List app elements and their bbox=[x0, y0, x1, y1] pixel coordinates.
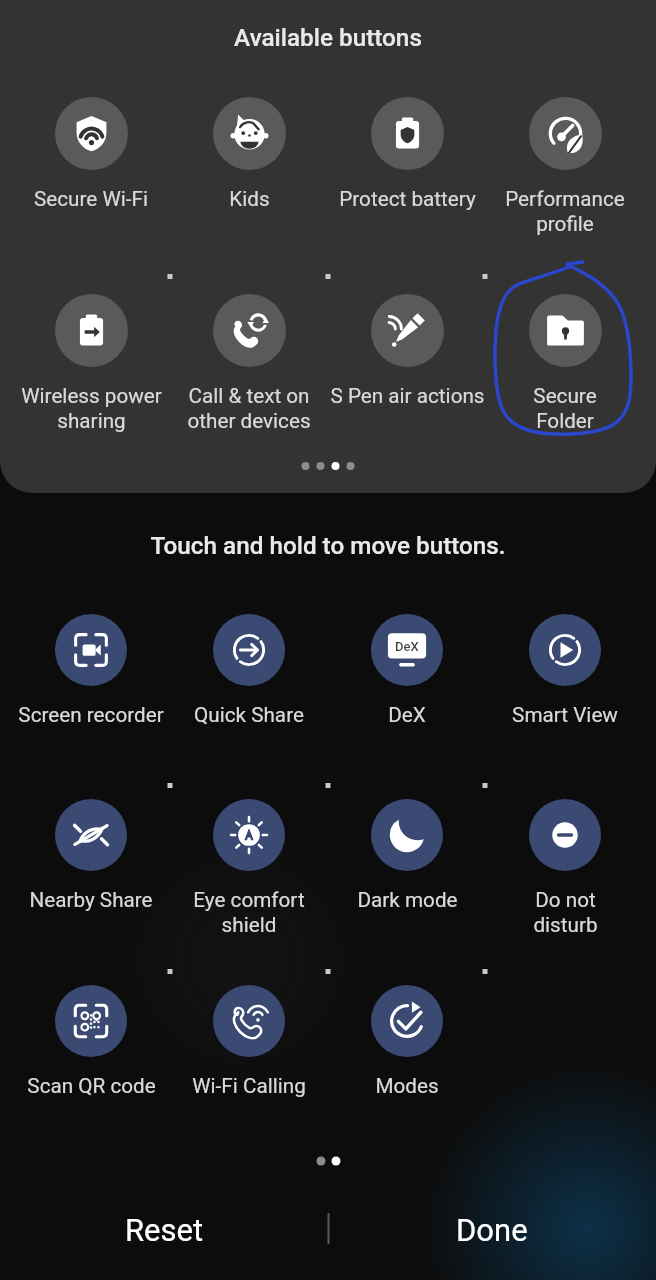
other: Modes bbox=[371, 985, 443, 1057]
other: Secure Wi-Fi bbox=[55, 97, 128, 170]
button[interactable]: DeX bbox=[328, 614, 486, 727]
other: Wi-Fi Calling bbox=[213, 985, 285, 1057]
staticText: Screen recorder bbox=[18, 703, 164, 727]
button[interactable]: Performance profile bbox=[486, 97, 644, 236]
staticText: Dark mode bbox=[357, 888, 458, 912]
other: Nearby Share bbox=[55, 799, 127, 871]
staticText: Wi-Fi Calling bbox=[192, 1074, 306, 1098]
staticText: Modes bbox=[375, 1074, 439, 1098]
other: Kids bbox=[213, 97, 286, 170]
staticText: Smart View bbox=[512, 703, 618, 727]
button[interactable]: Protect battery bbox=[328, 97, 486, 211]
other: Screen recorder bbox=[55, 614, 127, 686]
other: Dark mode bbox=[371, 799, 443, 871]
staticText: Touch and hold to move buttons. bbox=[0, 531, 656, 559]
other: Smart View bbox=[529, 614, 601, 686]
staticText: Do not disturb bbox=[533, 888, 598, 937]
button[interactable]: Done bbox=[328, 1205, 656, 1255]
button[interactable]: Wireless power sharing bbox=[12, 294, 170, 433]
staticText: Protect battery bbox=[339, 187, 476, 211]
other: Quick Share bbox=[213, 614, 285, 686]
button[interactable]: Scan QR code bbox=[12, 985, 170, 1098]
button[interactable]: Reset bbox=[0, 1205, 328, 1255]
button[interactable]: Quick Share bbox=[170, 614, 328, 727]
button[interactable]: Kids bbox=[170, 97, 328, 211]
staticText: DeX bbox=[395, 639, 419, 654]
button[interactable]: Modes bbox=[328, 985, 486, 1098]
other: Protect battery bbox=[371, 97, 444, 170]
button[interactable]: Smart View bbox=[486, 614, 644, 727]
button[interactable]: Dark mode bbox=[328, 799, 486, 912]
staticText: Secure Wi-Fi bbox=[34, 187, 148, 211]
staticText: Scan QR code bbox=[27, 1074, 156, 1098]
button[interactable]: Secure Folder bbox=[486, 294, 644, 433]
staticText: Kids bbox=[229, 187, 270, 211]
staticText: Reset bbox=[125, 1212, 204, 1248]
button[interactable]: Screen recorder bbox=[12, 614, 170, 727]
other: Do not disturb bbox=[529, 799, 601, 871]
staticText: Performance profile bbox=[505, 187, 625, 236]
other: Performance profile bbox=[529, 97, 602, 170]
other: Eye comfort shield bbox=[213, 799, 285, 871]
other: S Pen air actions bbox=[371, 294, 444, 367]
other: Scan QR code bbox=[55, 985, 127, 1057]
staticText: Quick Share bbox=[194, 703, 304, 727]
staticText: Call & text on other devices bbox=[187, 384, 311, 433]
button[interactable]: Do not disturb bbox=[486, 799, 644, 937]
staticText: Wireless power sharing bbox=[21, 384, 162, 433]
staticText: Nearby Share bbox=[29, 888, 153, 912]
button[interactable]: Nearby Share bbox=[12, 799, 170, 912]
staticText: DeX bbox=[388, 703, 426, 727]
staticText: Available buttons bbox=[0, 23, 656, 51]
staticText: Done bbox=[456, 1212, 528, 1248]
other: Call and text on other devices bbox=[213, 294, 286, 367]
button[interactable]: Secure Wi-Fi bbox=[12, 97, 170, 211]
button[interactable]: Eye comfort shield bbox=[170, 799, 328, 937]
button[interactable]: Wi-Fi Calling bbox=[170, 985, 328, 1098]
other: Wireless power sharing bbox=[55, 294, 128, 367]
staticText: S Pen air actions bbox=[330, 384, 485, 408]
other: Secure Folder bbox=[529, 294, 602, 367]
staticText: Secure Folder bbox=[533, 384, 597, 433]
other: DeX bbox=[371, 614, 443, 686]
button[interactable]: Call and text on other devices bbox=[170, 294, 328, 433]
staticText: Eye comfort shield bbox=[193, 888, 305, 937]
button[interactable]: S Pen air actions bbox=[328, 294, 486, 408]
